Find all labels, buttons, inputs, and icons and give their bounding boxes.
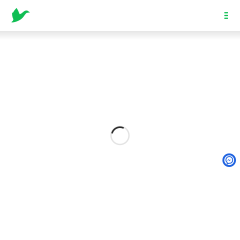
button[interactable]: Open menu: [214, 1, 240, 30]
button[interactable]: Chat on Messenger: [217, 148, 240, 172]
button[interactable]: Home: [0, 0, 39, 30]
